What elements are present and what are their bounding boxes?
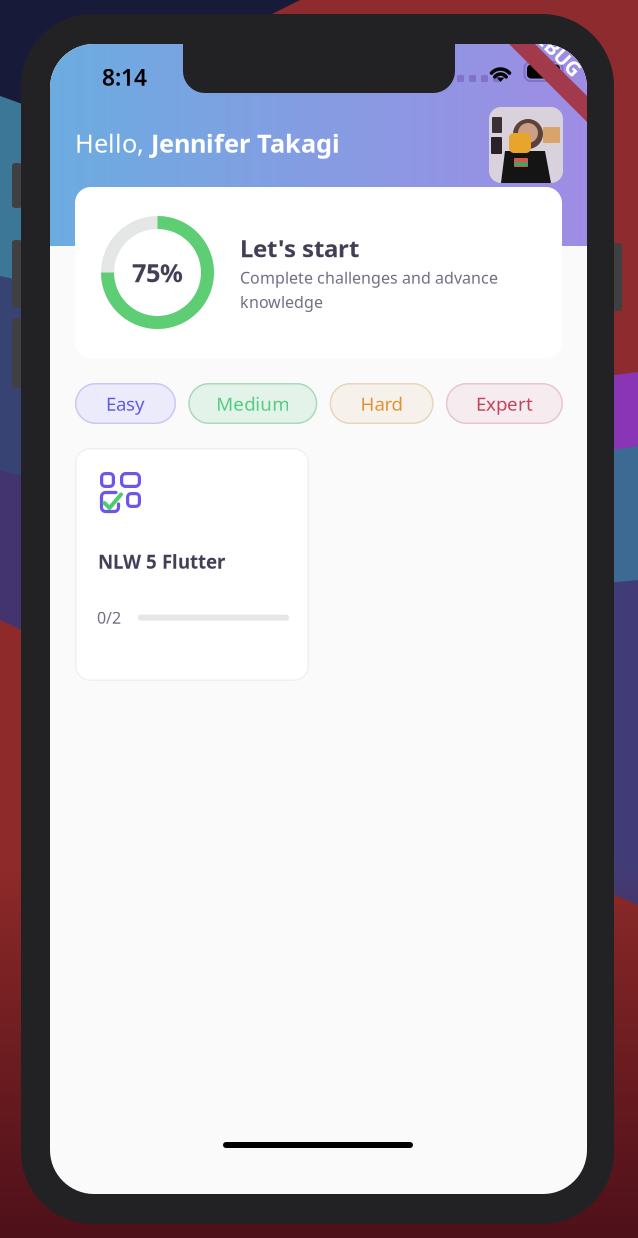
staticText: 75% (132, 256, 183, 289)
button[interactable]: Expert (446, 383, 563, 424)
staticText: Hello, (75, 126, 151, 160)
staticText: Complete challenges and advance (240, 267, 498, 288)
button[interactable]: Easy (75, 383, 176, 424)
staticText: DEBUG (520, 35, 588, 62)
staticText: NLW 5 Flutter (98, 549, 225, 574)
staticText: Jennifer Takagi (151, 126, 340, 160)
staticText: 0/2 (97, 607, 121, 628)
button[interactable]: Hard (330, 383, 434, 424)
staticText: Let's start (240, 232, 359, 264)
button[interactable]: NLW 5 Flutter (75, 448, 309, 681)
staticText: 8:14 (102, 62, 147, 92)
staticText: Easy (106, 391, 145, 416)
button[interactable]: Profile photo (489, 107, 563, 183)
staticText: Expert (476, 391, 533, 416)
button[interactable]: Medium (188, 383, 317, 424)
staticText: Hard (361, 391, 403, 416)
staticText: Medium (216, 391, 289, 416)
staticText: knowledge (240, 291, 323, 312)
